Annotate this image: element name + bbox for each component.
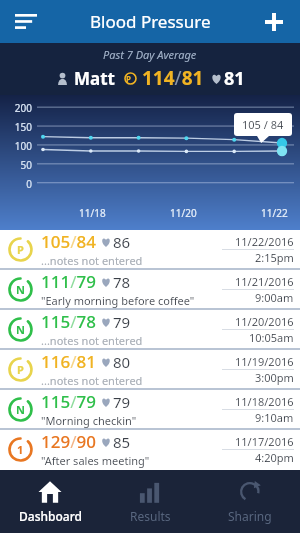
staticText: 10:05am (249, 330, 294, 345)
staticText: 79 (113, 392, 131, 412)
staticText: 0 (0, 177, 32, 191)
staticText: P (126, 73, 131, 84)
button[interactable]: P (0, 350, 300, 388)
staticText: Blood Pressure (90, 10, 211, 33)
staticText: 1 (17, 442, 24, 457)
staticText: 80 (113, 352, 131, 372)
button[interactable]: N (0, 310, 300, 348)
staticText: 11/21/2016 (235, 274, 294, 289)
staticText: 100 (0, 139, 32, 153)
staticText: 2:15pm (255, 250, 294, 265)
staticText: ...notes not entered (41, 333, 143, 348)
button[interactable]: Add reading (256, 4, 292, 40)
button[interactable]: Menu (8, 4, 44, 40)
staticText: 4:20pm (255, 450, 294, 465)
staticText: Sharing (228, 508, 272, 524)
staticText: "After sales meeting" (41, 453, 150, 468)
staticText: P (17, 242, 24, 257)
staticText: N (16, 282, 25, 297)
staticText: 11/20/2016 (235, 314, 294, 329)
staticText: 115/78 (41, 310, 96, 333)
staticText: 78 (113, 272, 131, 292)
staticText: 105 / 84 (242, 117, 284, 132)
staticText: 200 (0, 101, 32, 115)
button[interactable]: 1 (0, 430, 300, 468)
staticText: 111/79 (41, 270, 96, 293)
staticText: 11/22/2016 (235, 234, 294, 249)
staticText: Matt (74, 67, 115, 90)
staticText: "Morning checkin" (41, 413, 137, 428)
staticText: 114/81 (142, 65, 204, 91)
staticText: P (17, 362, 24, 377)
button[interactable]: P (0, 230, 300, 268)
staticText: ...notes not entered (41, 373, 143, 388)
staticText: 81 (224, 66, 245, 91)
staticText: 11/18/2016 (235, 394, 294, 409)
staticText: 115/79 (41, 390, 96, 413)
button[interactable]: Sharing (200, 470, 300, 533)
staticText: 11/19/2016 (235, 354, 294, 369)
staticText: 79 (113, 312, 131, 332)
staticText: 11/17/2016 (235, 434, 294, 449)
staticText: 129/90 (41, 430, 96, 453)
button[interactable]: Results (100, 470, 200, 533)
staticText: 3:00pm (255, 370, 294, 385)
staticText: 85 (113, 432, 131, 452)
staticText: 11/20 (170, 206, 197, 220)
staticText: "Early morning before coffee" (41, 293, 195, 308)
staticText: Dashboard (19, 508, 82, 524)
button[interactable]: Dashboard (0, 470, 100, 533)
button[interactable]: N (0, 270, 300, 308)
staticText: N (16, 402, 25, 417)
staticText: 50 (0, 158, 32, 172)
staticText: Results (130, 508, 171, 524)
button[interactable]: N (0, 390, 300, 428)
staticText: 11/18 (79, 206, 106, 220)
staticText: Past 7 Day Average (103, 47, 197, 62)
staticText: 105/84 (41, 230, 96, 253)
staticText: 9:10am (255, 410, 294, 425)
staticText: 150 (0, 120, 32, 134)
staticText: 9:00am (255, 290, 294, 305)
staticText: 86 (113, 232, 131, 252)
staticText: 116/81 (41, 350, 96, 373)
staticText: 11/22 (261, 206, 288, 220)
staticText: ...notes not entered (41, 253, 143, 268)
staticText: N (16, 322, 25, 337)
